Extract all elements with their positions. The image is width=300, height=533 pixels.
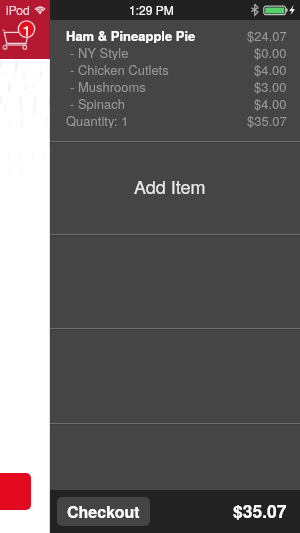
staticText: Add Item xyxy=(134,173,206,199)
button[interactable]: Checkout xyxy=(57,497,150,526)
staticText: Quantity: 1 xyxy=(66,111,129,128)
staticText: - Spinach xyxy=(70,94,125,111)
staticText: - Mushrooms xyxy=(70,77,146,94)
staticText: $0.00 xyxy=(254,43,287,60)
staticText: $35.07 xyxy=(233,498,287,523)
staticText: $4.00 xyxy=(254,94,287,111)
staticText: $35.07 xyxy=(247,111,287,128)
button[interactable]: Ham & Pineapple Pie xyxy=(50,20,300,141)
staticText: iPod xyxy=(6,1,30,18)
staticText: 1:29 PM xyxy=(129,1,174,18)
staticText: - Chicken Cutlets xyxy=(70,60,169,77)
staticText: $3.00 xyxy=(254,77,287,94)
staticText: 1 xyxy=(19,21,34,40)
staticText: $4.00 xyxy=(254,60,287,77)
button[interactable]: Open cart xyxy=(0,473,31,510)
staticText: - NY Style xyxy=(70,43,129,60)
button[interactable]: Add Item xyxy=(50,143,300,234)
staticText: Checkout xyxy=(67,500,140,523)
staticText: Ham & Pineapple Pie xyxy=(66,26,196,43)
staticText: $24.07 xyxy=(247,26,287,43)
